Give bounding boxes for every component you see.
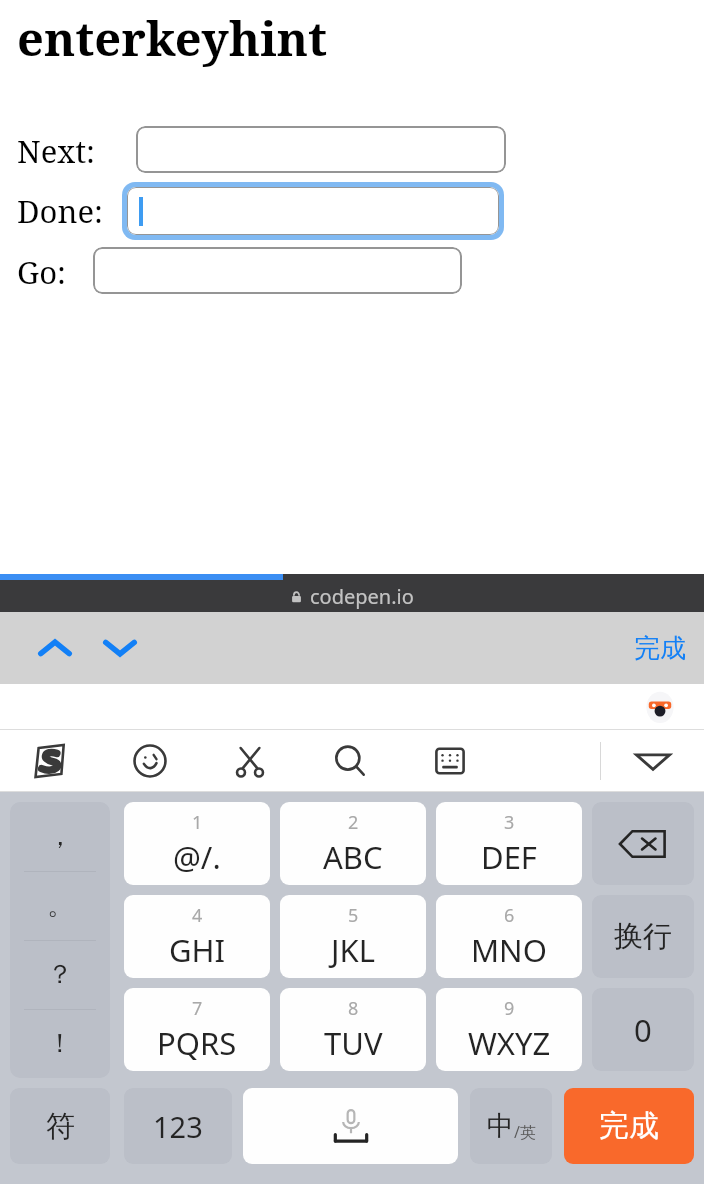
button[interactable]: 3	[436, 802, 582, 885]
button[interactable]: ，	[10, 802, 110, 871]
staticText: ，	[47, 820, 73, 853]
staticText: 2	[348, 810, 359, 835]
staticText: 7	[192, 996, 203, 1021]
staticText: DEF	[481, 836, 537, 878]
staticText: 3	[504, 810, 515, 835]
button[interactable]: 换行	[592, 895, 694, 978]
staticText: ！	[47, 1027, 73, 1060]
button[interactable]: Clipboard	[222, 730, 278, 792]
button[interactable]: 5	[280, 895, 426, 978]
staticText: /英	[514, 1121, 536, 1143]
button[interactable]	[122, 182, 504, 240]
staticText: Go:	[17, 251, 66, 293]
staticText: codepen.io	[310, 583, 414, 610]
staticText: TUV	[324, 1022, 383, 1064]
staticText: 符	[46, 1108, 75, 1145]
staticText: Done:	[17, 190, 103, 232]
staticText: 完成	[634, 632, 686, 665]
button[interactable]: 。	[10, 871, 110, 940]
staticText: 中	[487, 1109, 514, 1143]
button[interactable]: Assistant	[642, 689, 678, 725]
staticText: 0	[634, 1009, 652, 1051]
button[interactable]: Keyboard layout	[422, 730, 478, 792]
staticText: 4	[192, 903, 203, 928]
staticText: Next:	[17, 130, 95, 172]
button[interactable]: ？	[10, 940, 110, 1009]
staticText: 123	[153, 1107, 203, 1146]
staticText: ？	[47, 958, 73, 991]
button[interactable]	[93, 247, 462, 294]
button[interactable]: 4	[124, 895, 270, 978]
button[interactable]: Sogou	[22, 730, 78, 792]
button[interactable]: 123	[124, 1088, 232, 1164]
staticText: 8	[348, 996, 359, 1021]
button[interactable]: 0	[592, 988, 694, 1071]
button[interactable]: 符	[10, 1088, 110, 1164]
button[interactable]: 1	[124, 802, 270, 885]
staticText: @/.	[173, 836, 221, 878]
staticText: 5	[348, 903, 359, 928]
staticText: 。	[47, 889, 73, 922]
staticText: enterkeyhint	[17, 6, 328, 70]
staticText: WXYZ	[468, 1022, 551, 1064]
button[interactable]: 9	[436, 988, 582, 1071]
staticText: 换行	[614, 918, 672, 955]
staticText: GHI	[169, 929, 226, 971]
staticText: 9	[504, 996, 515, 1021]
button[interactable]: 2	[280, 802, 426, 885]
button[interactable]: Next field	[93, 612, 147, 684]
staticText: 1	[192, 810, 203, 835]
button[interactable]	[136, 126, 506, 173]
button[interactable]: Search	[322, 730, 378, 792]
button[interactable]: 7	[124, 988, 270, 1071]
button[interactable]: Hide keyboard	[624, 730, 682, 792]
staticText: 6	[504, 903, 515, 928]
button[interactable]: 完成	[634, 612, 686, 684]
button[interactable]: 6	[436, 895, 582, 978]
button[interactable]: Backspace	[592, 802, 694, 885]
button[interactable]: 中	[470, 1088, 552, 1164]
staticText: MNO	[471, 929, 547, 971]
staticText: 完成	[599, 1107, 659, 1145]
button[interactable]: 8	[280, 988, 426, 1071]
button[interactable]: Emoji	[122, 730, 178, 792]
staticText: PQRS	[157, 1022, 237, 1064]
button[interactable]: 完成	[564, 1088, 694, 1164]
button[interactable]: Space, voice input	[243, 1088, 458, 1164]
staticText: ABC	[323, 836, 383, 878]
button[interactable]: Previous field	[28, 612, 82, 684]
staticText: JKL	[331, 929, 375, 971]
button[interactable]: ！	[10, 1009, 110, 1078]
